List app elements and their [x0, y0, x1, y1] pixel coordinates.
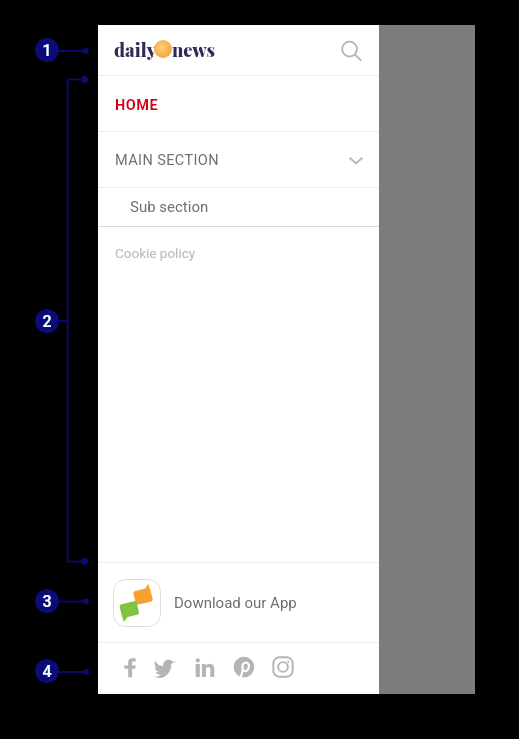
button[interactable]: Twitter: [154, 653, 182, 681]
staticText: 2: [42, 312, 52, 331]
button[interactable]: Search: [331, 30, 371, 70]
button[interactable]: Cookie policy: [98, 227, 379, 279]
staticText: Cookie policy: [115, 245, 196, 261]
button[interactable]: Download our App: [98, 563, 379, 642]
staticText: 4: [42, 662, 52, 681]
button[interactable]: HOME: [98, 76, 379, 131]
button[interactable]: Instagram: [265, 653, 293, 681]
button[interactable]: MAIN SECTION: [98, 132, 379, 187]
button[interactable]: LinkedIn: [191, 653, 219, 681]
staticText: daily: [114, 37, 157, 61]
button[interactable]: Facebook: [117, 653, 145, 681]
staticText: news: [172, 37, 216, 61]
staticText: HOME: [115, 97, 159, 114]
button[interactable]: Pinterest: [228, 653, 256, 681]
staticText: MAIN SECTION: [115, 152, 219, 169]
staticText: Download our App: [174, 594, 297, 612]
staticText: Sub section: [130, 198, 209, 216]
staticText: 1: [42, 41, 52, 60]
button[interactable]: Sub section: [98, 188, 379, 226]
staticText: 3: [42, 592, 52, 611]
